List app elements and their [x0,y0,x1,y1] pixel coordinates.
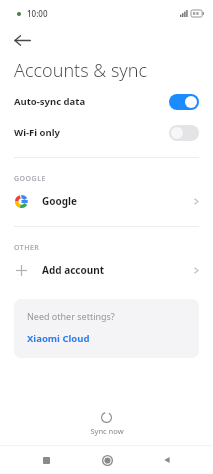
staticText: Auto-sync data [14,95,86,108]
staticText: GOOGLE [14,174,46,184]
staticText: Need other settings? [27,310,115,322]
button[interactable]: Wi-Fi only [0,117,213,148]
button[interactable]: Need other settings? [14,299,199,358]
staticText: 10:00 [27,8,48,19]
button[interactable]: Google [0,184,213,218]
staticText: OTHER [14,243,40,253]
staticText: Add account [42,263,105,277]
button[interactable]: Home [92,446,122,474]
button[interactable]: Back [152,446,182,474]
staticText: Google [42,194,78,208]
staticText: Wi-Fi only [14,126,60,139]
button[interactable]: Add account [0,253,213,287]
button[interactable]: Sync now [0,412,213,436]
button[interactable]: Recents [31,446,61,474]
staticText: Accounts & sync [14,58,148,83]
button[interactable]: Auto-sync data [0,86,213,117]
staticText: Sync now [90,426,124,436]
button[interactable]: Back [8,26,36,54]
staticText: Xiaomi Cloud [27,332,90,345]
